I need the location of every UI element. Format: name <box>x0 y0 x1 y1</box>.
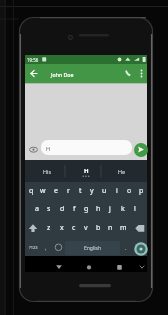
button[interactable]: u <box>98 184 110 198</box>
button[interactable]: i <box>111 184 123 198</box>
button[interactable]: ?123 <box>25 241 41 253</box>
staticText: 19:56 <box>27 57 39 63</box>
staticText: g <box>84 204 89 214</box>
button[interactable]: q <box>25 184 37 198</box>
staticText: m <box>120 223 127 233</box>
staticText: c <box>72 223 76 233</box>
button[interactable]: k <box>117 202 129 216</box>
button[interactable] <box>133 221 146 235</box>
staticText: His <box>43 168 51 175</box>
button[interactable]: m <box>117 221 129 235</box>
staticText: l <box>134 204 136 214</box>
button[interactable]: o <box>123 184 135 198</box>
staticText: H <box>46 145 51 152</box>
staticText: x <box>60 223 64 233</box>
button[interactable]: . <box>122 241 130 253</box>
button[interactable]: English <box>65 241 120 255</box>
staticText: w <box>40 186 46 196</box>
button[interactable]: d <box>56 202 68 216</box>
staticText: , <box>45 244 47 251</box>
button[interactable]: His <box>32 165 62 177</box>
staticText: John Doe <box>51 71 74 78</box>
button[interactable]: b <box>92 221 104 235</box>
button[interactable]: t <box>74 184 86 198</box>
button[interactable]: s <box>43 202 55 216</box>
button[interactable] <box>111 257 125 271</box>
button[interactable]: g <box>80 202 92 216</box>
staticText: p <box>139 186 144 196</box>
button[interactable] <box>136 258 148 270</box>
staticText: q <box>29 186 34 196</box>
button[interactable] <box>41 140 132 155</box>
staticText: f <box>73 204 76 214</box>
staticText: He <box>118 168 126 175</box>
button[interactable]: y <box>86 184 98 198</box>
button[interactable]: v <box>80 221 92 235</box>
staticText: z <box>47 223 51 233</box>
button[interactable] <box>134 143 148 157</box>
staticText: . <box>125 244 127 251</box>
button[interactable]: H <box>71 165 101 177</box>
staticText: o <box>127 186 132 196</box>
button[interactable]: e <box>50 184 62 198</box>
button[interactable]: x <box>56 221 68 235</box>
button[interactable]: p <box>135 184 147 198</box>
button[interactable] <box>52 241 65 254</box>
staticText: j <box>109 204 111 214</box>
button[interactable]: , <box>42 241 50 253</box>
button[interactable] <box>25 64 147 83</box>
button[interactable] <box>47 257 61 271</box>
button[interactable] <box>79 257 93 271</box>
button[interactable]: a <box>31 202 43 216</box>
button[interactable]: He <box>107 165 137 177</box>
button[interactable]: w <box>37 184 49 198</box>
button[interactable] <box>27 221 40 235</box>
button[interactable] <box>27 67 40 80</box>
staticText: d <box>60 204 65 214</box>
button[interactable]: f <box>68 202 80 216</box>
staticText: H <box>84 167 89 175</box>
button[interactable] <box>134 242 148 256</box>
staticText: u <box>102 186 107 196</box>
staticText: i <box>116 186 118 196</box>
staticText: h <box>96 204 101 214</box>
staticText: s <box>47 204 51 214</box>
staticText: r <box>67 186 70 196</box>
staticText: English <box>84 245 102 252</box>
staticText: a <box>35 204 39 214</box>
button[interactable]: n <box>104 221 116 235</box>
staticText: e <box>54 186 58 196</box>
button[interactable] <box>135 67 147 80</box>
staticText: ?123 <box>29 245 38 250</box>
button[interactable]: j <box>104 202 116 216</box>
button[interactable]: h <box>92 202 104 216</box>
button[interactable] <box>121 67 134 80</box>
staticText: t <box>79 186 82 196</box>
button[interactable]: r <box>62 184 74 198</box>
staticText: b <box>96 223 101 233</box>
staticText: n <box>108 223 113 233</box>
staticText: v <box>84 223 88 233</box>
button[interactable]: c <box>68 221 80 235</box>
button[interactable]: z <box>43 221 55 235</box>
button[interactable]: l <box>129 202 141 216</box>
staticText: y <box>90 186 94 196</box>
staticText: k <box>121 204 125 214</box>
